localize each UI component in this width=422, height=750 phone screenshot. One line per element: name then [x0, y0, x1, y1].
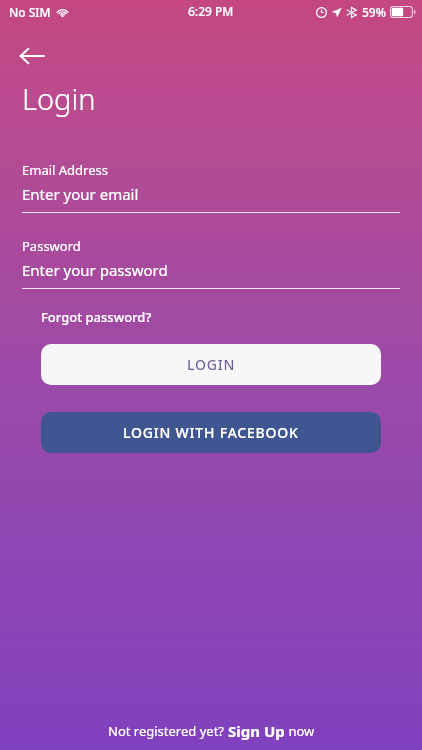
- button[interactable]: Forgot password?: [36, 303, 157, 331]
- staticText: Forgot password?: [41, 308, 152, 326]
- button[interactable]: LOGIN: [41, 344, 381, 385]
- button[interactable]: LOGIN WITH FACEBOOK: [41, 412, 381, 453]
- button[interactable]: Enter your password: [22, 260, 400, 288]
- staticText: LOGIN: [187, 355, 236, 374]
- staticText: Not registered yet?: [108, 722, 228, 740]
- staticText: Password: [22, 237, 81, 255]
- staticText: now: [285, 722, 315, 740]
- button[interactable]: Enter your email: [22, 184, 400, 212]
- button[interactable]: Not registered yet?: [0, 712, 422, 750]
- staticText: Enter your password: [22, 260, 168, 280]
- staticText: No SIM: [9, 4, 51, 20]
- staticText: 6:29 PM: [188, 3, 234, 19]
- staticText: 59%: [362, 4, 386, 20]
- staticText: Login: [22, 79, 96, 118]
- staticText: Enter your email: [22, 184, 139, 204]
- staticText: Sign Up: [228, 721, 285, 741]
- button[interactable]: Back: [10, 34, 54, 78]
- staticText: LOGIN WITH FACEBOOK: [123, 423, 299, 442]
- staticText: Email Address: [22, 161, 108, 179]
